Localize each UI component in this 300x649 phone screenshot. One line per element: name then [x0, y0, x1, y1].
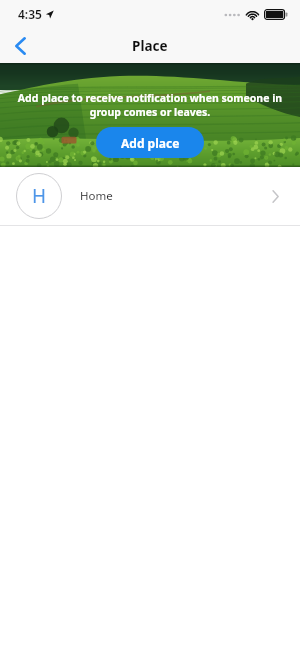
staticText: Add place — [121, 135, 180, 151]
staticText: H — [32, 183, 47, 209]
staticText: Place — [132, 37, 168, 55]
staticText: Home — [80, 188, 262, 204]
button[interactable]: H — [0, 167, 300, 225]
staticText: Add place to receive notification when s… — [10, 91, 290, 119]
button[interactable]: Add place — [96, 127, 204, 158]
staticText: 4:35 — [18, 6, 42, 22]
button[interactable]: Back — [0, 28, 40, 63]
